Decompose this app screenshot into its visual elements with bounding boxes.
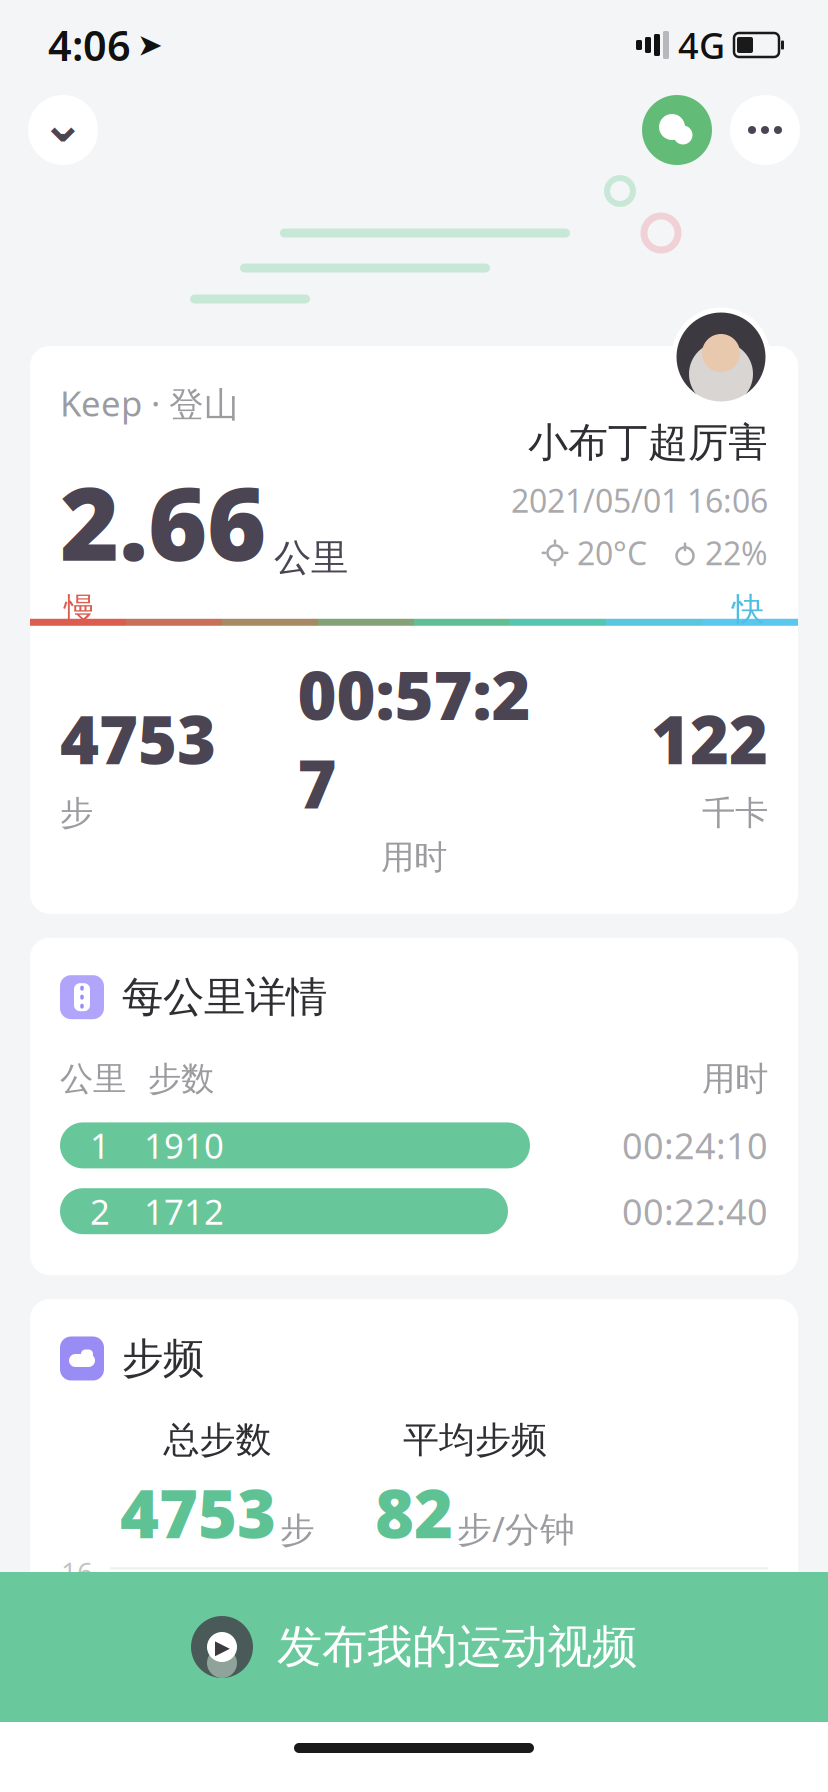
staticText: ▶ [214,1636,229,1658]
staticText: 4753 [120,1468,276,1557]
staticText: 165 [61,1553,93,1628]
staticText: 步频 [122,1333,204,1384]
staticText: 00:24:10 [622,1121,768,1169]
staticText: 2021/05/01 16:06 [511,479,768,522]
staticText: 00:57:27 [297,650,530,827]
button[interactable]: Collapse [28,95,98,165]
staticText: 22% [705,532,768,574]
staticText: 00:22:40 [622,1187,768,1235]
button[interactable]: Share to WeChat [642,95,712,165]
staticText: 1712 [144,1188,224,1234]
staticText: Keep · 登山 [60,380,239,426]
staticText: 20°C [577,532,647,574]
staticText: 步 [60,793,93,833]
staticText: 132 [61,1668,93,1742]
staticText: 122 [651,694,768,782]
staticText: 慢 [64,590,96,629]
staticText: 4G [678,21,725,69]
staticText: 千卡 [702,793,768,833]
staticText: 步 [280,1509,315,1552]
staticText: 4:06 [48,18,131,72]
staticText: 步数 [148,1059,214,1099]
staticText: 1 [90,1122,110,1168]
staticText: 平均步频 [403,1418,547,1462]
button[interactable]: ▶ [0,1572,828,1722]
staticText: 82 [375,1468,453,1557]
staticText: 快 [732,590,764,629]
staticText: 1910 [144,1122,224,1168]
staticText: 2.66 [60,454,266,589]
staticText: 小布丁超厉害 [528,418,768,467]
staticText: 用时 [381,837,447,878]
staticText: 发布我的运动视频 [277,1619,637,1675]
staticText: 用时 [702,1059,768,1099]
staticText: 4753 [60,694,216,782]
staticText: 公里 [60,1059,126,1099]
staticText: 2 [90,1188,110,1234]
button[interactable]: More options [730,95,800,165]
staticText: ➤ [137,28,163,62]
staticText: 总步数 [163,1418,271,1462]
staticText: ⌄ [40,93,85,153]
staticText: 每公里详情 [122,972,327,1023]
staticText: 步/分钟 [457,1506,575,1552]
staticText: 公里 [274,535,348,581]
